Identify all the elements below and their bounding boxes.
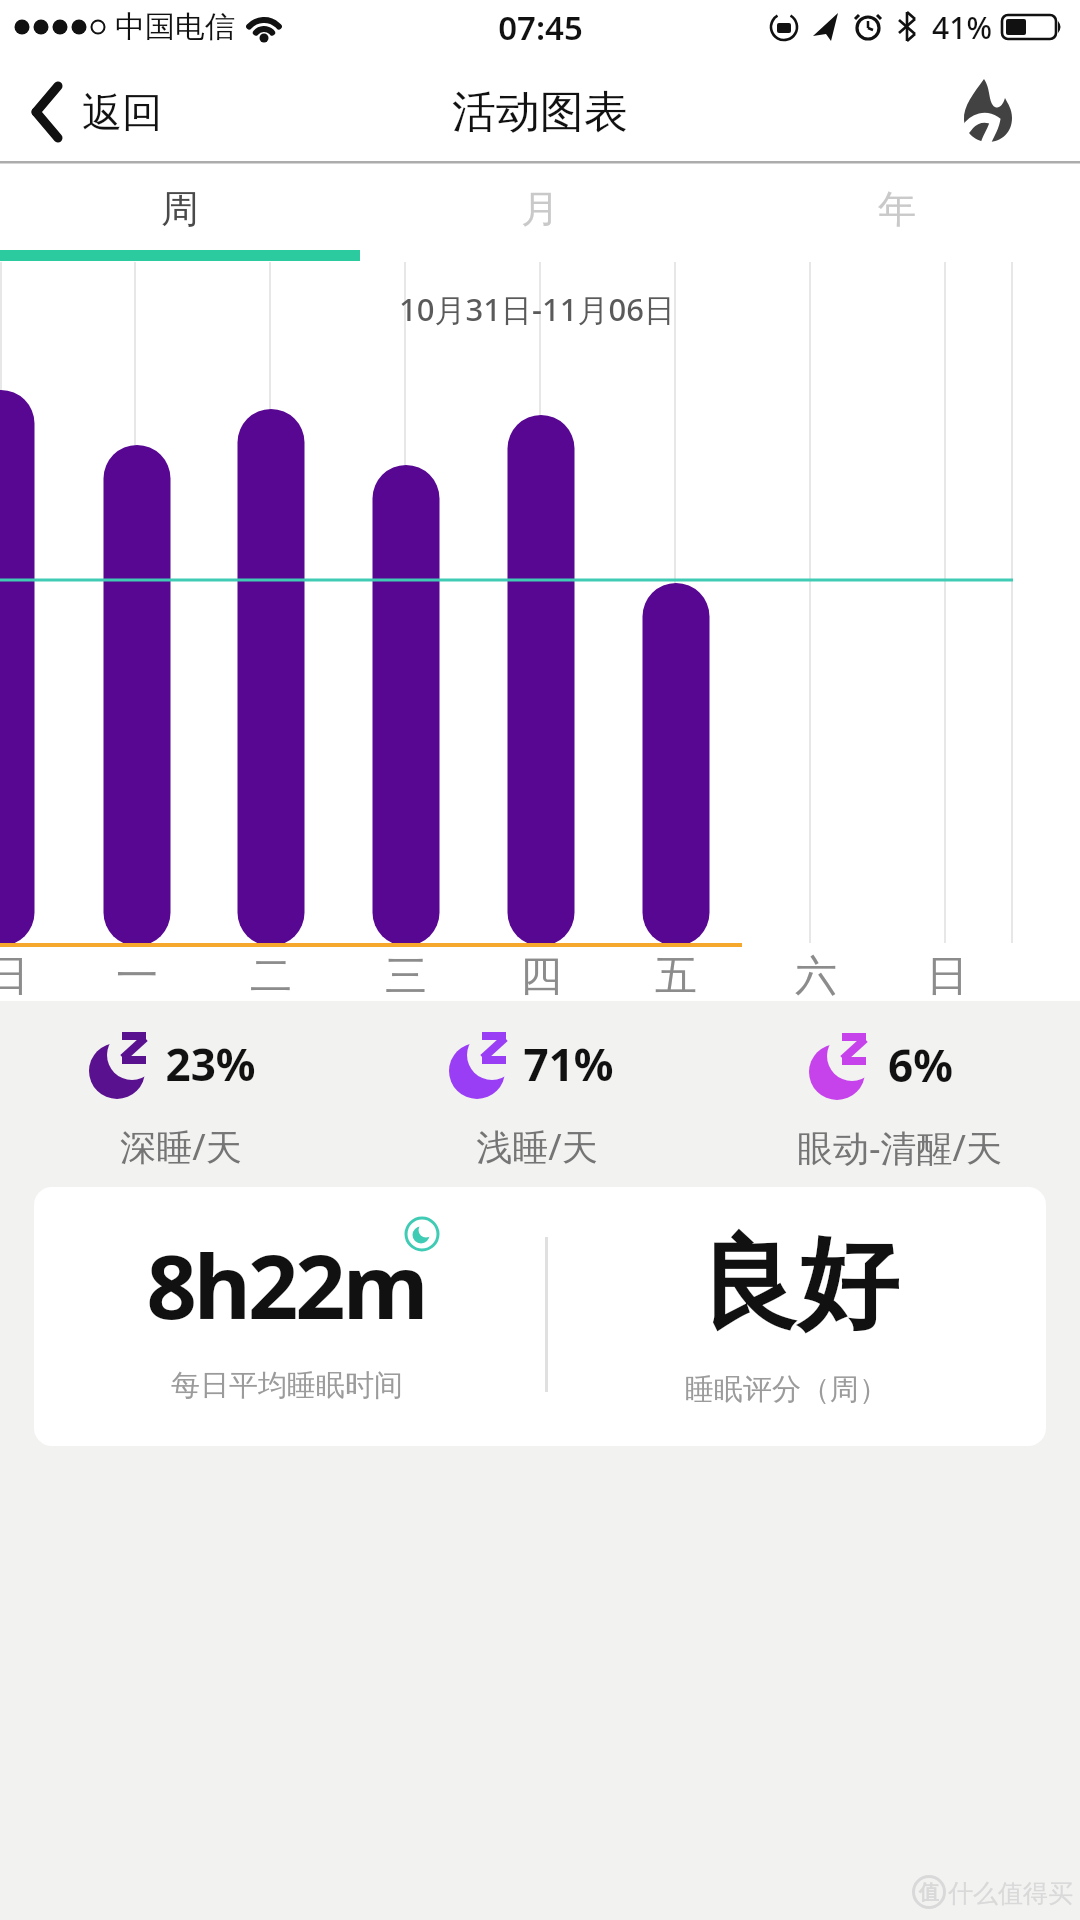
staticText: 年 [878, 185, 916, 233]
button[interactable]: 周 [0, 167, 360, 250]
staticText: 日 [0, 950, 29, 1003]
button[interactable] [34, 1187, 1046, 1446]
staticText: 活动图表 [452, 85, 628, 140]
staticText: 周 [161, 185, 199, 233]
staticText: 良好 [698, 1222, 898, 1348]
staticText: 浅睡/天 [476, 1122, 598, 1171]
staticText: 71% [523, 1034, 614, 1094]
staticText: 什么值得买 [948, 1878, 1073, 1909]
staticText: 五 [655, 950, 697, 1003]
staticText: 值 [919, 1880, 939, 1905]
button[interactable]: 月 [360, 167, 720, 250]
staticText: 四 [520, 950, 562, 1003]
button[interactable]: 返回 [42, 68, 202, 156]
staticText: 07:45 [498, 5, 583, 50]
staticText: 每日平均睡眠时间 [171, 1367, 403, 1404]
staticText: 六 [795, 950, 837, 1003]
staticText: 眼动-清醒/天 [797, 1123, 1002, 1172]
staticText: 一 [116, 950, 158, 1003]
staticText: 8h22m [146, 1225, 426, 1345]
staticText: 23% [165, 1034, 256, 1094]
button[interactable]: 年 [717, 167, 1077, 250]
staticText: 10月31日-11月06日 [399, 288, 675, 330]
staticText: 二 [250, 950, 292, 1003]
staticText: 41% [932, 7, 992, 48]
staticText: 日 [926, 950, 968, 1003]
staticText: 三 [385, 950, 427, 1003]
staticText: 月 [521, 185, 559, 233]
staticText: 中国电信 [115, 8, 235, 46]
staticText: 6% [888, 1035, 953, 1095]
staticText: 深睡/天 [120, 1122, 242, 1171]
staticText: 返回 [82, 87, 162, 137]
staticText: 睡眠评分（周） [685, 1371, 888, 1408]
